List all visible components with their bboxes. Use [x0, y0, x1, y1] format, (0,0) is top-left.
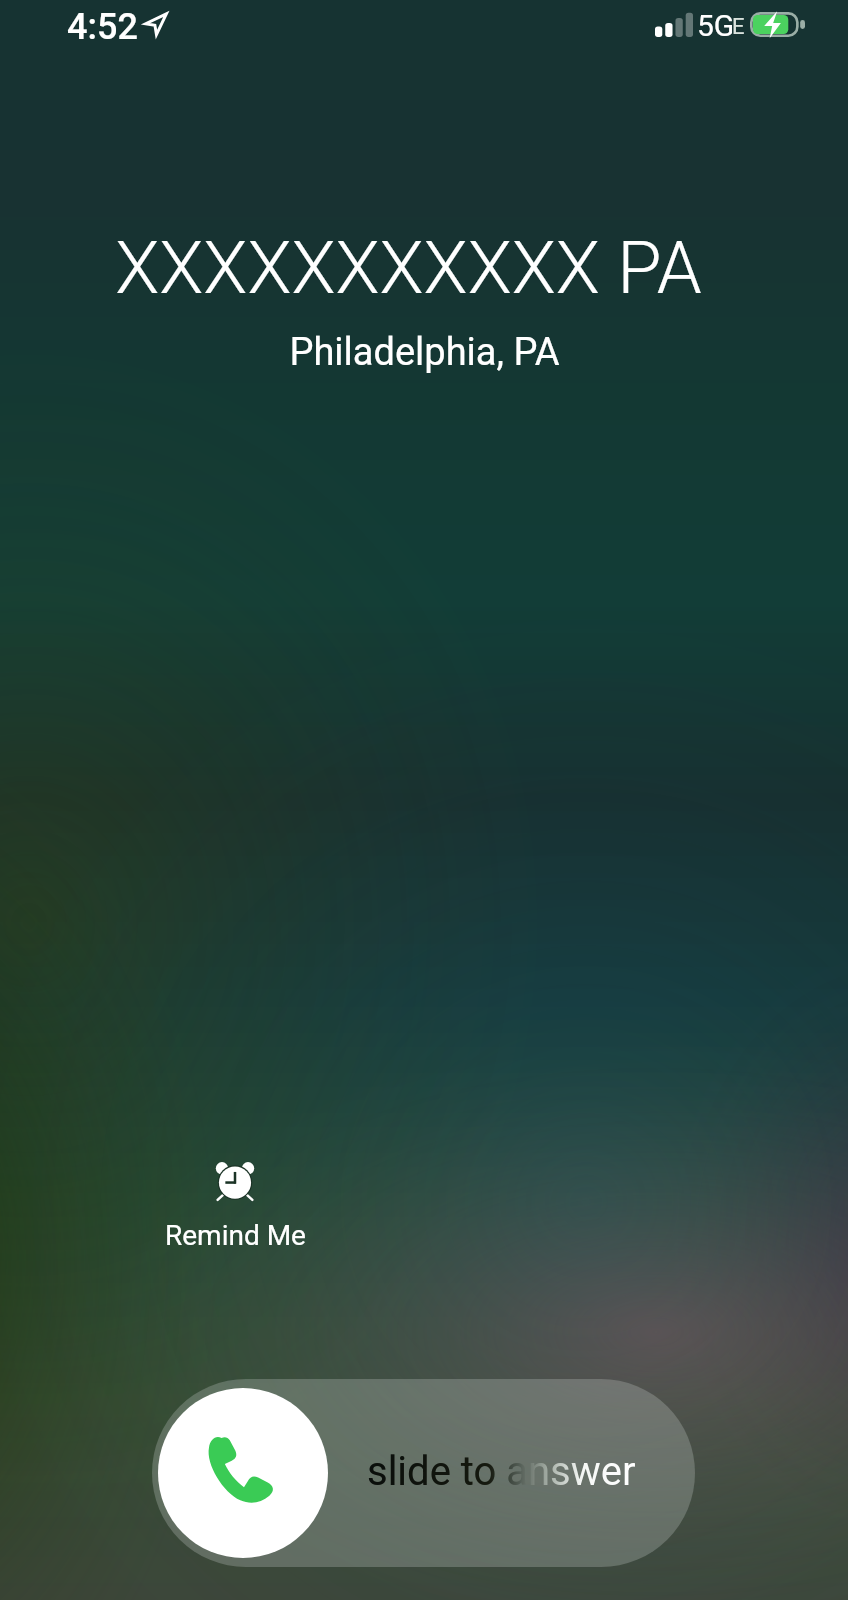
staticText: Remind Me: [165, 1219, 306, 1252]
staticText: 5G: [697, 8, 735, 43]
other: Answer call: [158, 1388, 328, 1558]
other: Location in use: [145, 13, 167, 35]
staticText: XXXXXXXXXXX PA: [115, 226, 702, 310]
staticText: slide to answer: [367, 1448, 636, 1495]
staticText: Philadelphia, PA: [289, 330, 560, 375]
other: Remind Me: [214, 1160, 256, 1202]
button[interactable]: Remind Me: [150, 1160, 320, 1252]
staticText: E: [732, 14, 745, 40]
button[interactable]: Answer call: [152, 1379, 695, 1567]
staticText: 4:52: [67, 6, 138, 48]
